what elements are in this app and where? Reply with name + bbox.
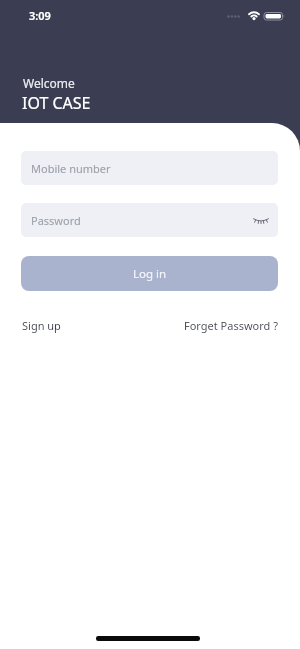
button[interactable]: Mobile number — [21, 151, 278, 185]
button[interactable]: Forget Password ? — [184, 318, 278, 333]
staticText: 3:09 — [29, 8, 51, 23]
button[interactable]: Log in — [21, 256, 278, 291]
staticText: Mobile number — [31, 161, 111, 176]
staticText: IOT CASE — [22, 92, 91, 114]
staticText: Password — [31, 213, 81, 228]
button[interactable]: Password — [21, 203, 278, 237]
staticText: Welcome — [23, 75, 75, 91]
staticText: Log in — [133, 266, 167, 282]
button[interactable]: Sign up — [22, 318, 61, 333]
